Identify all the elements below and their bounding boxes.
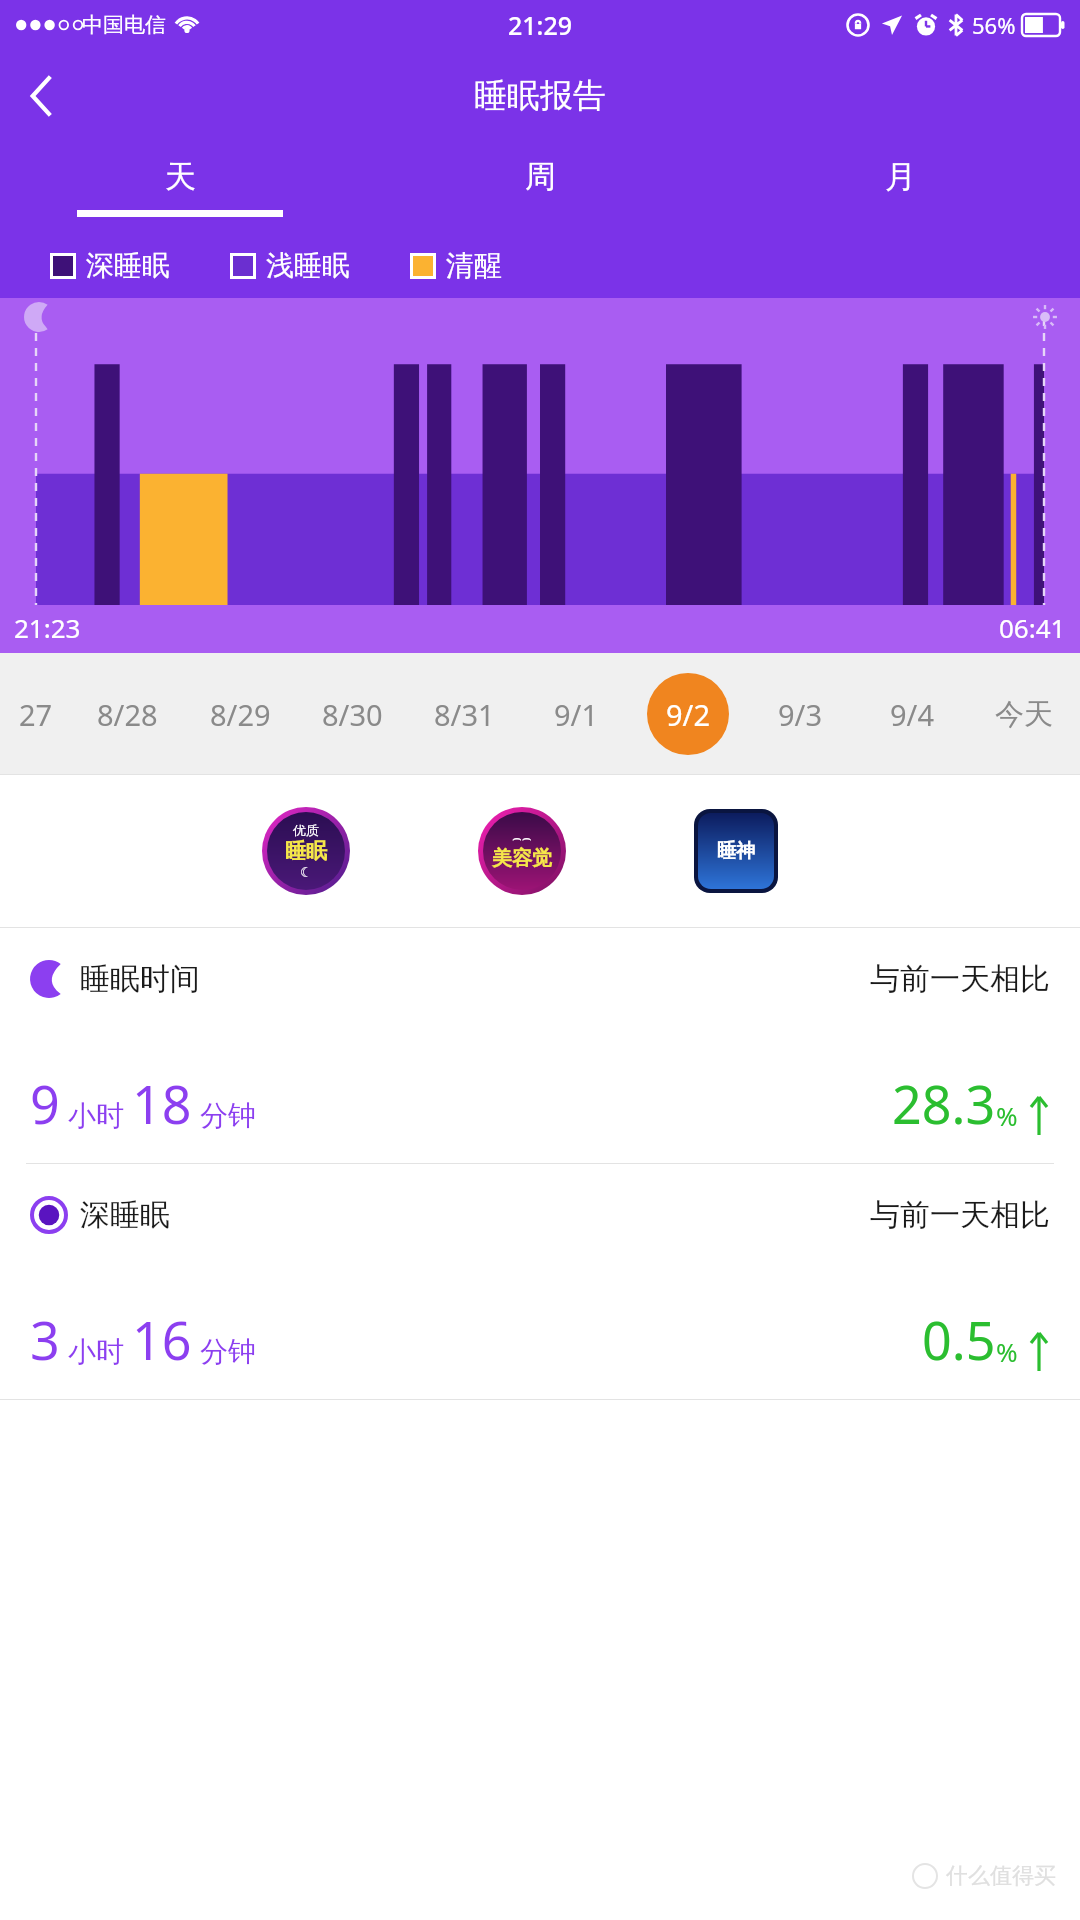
staticText: 天 (165, 157, 196, 196)
button[interactable]: 8/28 (71, 653, 184, 775)
button[interactable]: 周 (360, 142, 720, 232)
button[interactable]: 睡眠时间 (0, 928, 1080, 1163)
staticText: 分钟 (200, 1334, 256, 1369)
staticText: 8/28 (97, 695, 158, 734)
button[interactable]: 深睡眠 (0, 1164, 1080, 1399)
staticText: 16 (132, 1304, 192, 1375)
button[interactable]: 27 (0, 653, 71, 775)
staticText: ⌢⌢ (512, 831, 532, 846)
staticText: 深睡眠 (86, 248, 170, 283)
staticText: 中国电信 (82, 12, 166, 38)
staticText: 分钟 (200, 1098, 256, 1133)
staticText: 周 (525, 157, 556, 196)
button[interactable]: 优质睡眠徽章 (262, 807, 350, 895)
staticText: 小时 (68, 1334, 124, 1369)
button[interactable]: 8/29 (184, 653, 296, 775)
staticText: 美容觉 (492, 846, 552, 871)
staticText: 3 (30, 1304, 60, 1375)
staticText: 9/1 (554, 695, 598, 734)
staticText: 睡神 (717, 839, 755, 863)
staticText: 深睡眠 (80, 1196, 170, 1234)
button[interactable]: 9/2 (632, 653, 744, 775)
button[interactable]: 天 (0, 142, 360, 232)
staticText: ☾ (300, 864, 313, 880)
staticText: % (996, 1098, 1018, 1133)
staticText: 优质 (293, 822, 319, 838)
staticText: 清醒 (446, 248, 502, 283)
button[interactable]: 今天 (968, 653, 1080, 775)
staticText: 8/30 (322, 695, 383, 734)
button[interactable]: 8/30 (296, 653, 408, 775)
staticText: 0.5 (922, 1304, 996, 1375)
staticText: 28.3 (892, 1068, 996, 1139)
staticText: 56% (972, 10, 1016, 40)
staticText: 月 (885, 157, 916, 196)
staticText: 小时 (68, 1098, 124, 1133)
staticText: 9/4 (890, 695, 934, 734)
staticText: 与前一天相比 (870, 1196, 1050, 1234)
staticText: 9/2 (666, 695, 710, 734)
staticText: 21:29 (508, 8, 573, 42)
button[interactable]: 返回 (0, 54, 84, 138)
staticText: 浅睡眠 (266, 248, 350, 283)
staticText: 今天 (995, 696, 1053, 733)
staticText: % (996, 1334, 1018, 1369)
staticText: 9 (30, 1068, 60, 1139)
staticText: 睡眠 (285, 838, 327, 864)
staticText: 睡眠时间 (80, 960, 200, 998)
button[interactable]: 月 (720, 142, 1080, 232)
button[interactable]: 9/1 (520, 653, 632, 775)
button[interactable]: 9/3 (744, 653, 856, 775)
button[interactable]: 睡神徽章 (698, 813, 774, 889)
staticText: 8/29 (210, 695, 271, 734)
staticText: 与前一天相比 (870, 960, 1050, 998)
staticText: 18 (132, 1068, 192, 1139)
button[interactable]: 9/4 (856, 653, 968, 775)
staticText: 8/31 (434, 695, 495, 734)
button[interactable]: 8/31 (408, 653, 520, 775)
staticText: 27 (19, 695, 53, 734)
button[interactable]: 美容觉徽章 (478, 807, 566, 895)
staticText: 9/3 (778, 695, 822, 734)
staticText: 睡眠报告 (474, 75, 606, 117)
staticText: 06:41 (999, 610, 1066, 645)
staticText: 什么值得买 (946, 1862, 1056, 1890)
staticText: 21:23 (14, 610, 81, 645)
